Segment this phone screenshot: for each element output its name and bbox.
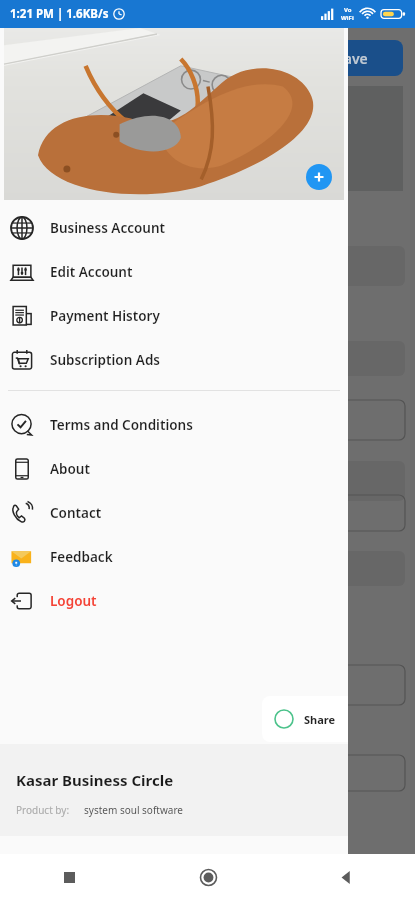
staticText: Product by: <box>16 803 70 817</box>
button[interactable]: Home <box>139 854 277 900</box>
button[interactable]: Back <box>277 854 415 900</box>
button[interactable]: Add <box>306 164 332 190</box>
button[interactable]: Feedback <box>0 535 348 579</box>
button[interactable]: About <box>0 447 348 491</box>
staticText: system soul software <box>84 803 184 817</box>
staticText: Feedback <box>50 548 113 566</box>
staticText: Vo <box>344 6 352 14</box>
staticText: Business Account <box>50 219 165 237</box>
staticText: Edit Account <box>50 263 133 281</box>
button[interactable]: Terms and Conditions <box>0 403 348 447</box>
staticText: About <box>50 460 90 478</box>
button[interactable]: Share <box>262 696 348 742</box>
staticText: 1:21 PM | 1.6KB/s <box>10 6 109 22</box>
button[interactable]: Contact <box>0 491 348 535</box>
button[interactable]: Subscription Ads <box>0 338 348 382</box>
button[interactable]: Save <box>300 40 403 76</box>
staticText: Share <box>304 712 336 727</box>
staticText: Terms and Conditions <box>50 416 193 434</box>
staticText: Contact <box>50 504 102 522</box>
staticText: Subscription Ads <box>50 351 160 369</box>
staticText: WiFi <box>341 14 354 22</box>
staticText: Save <box>336 49 368 68</box>
button[interactable]: Edit Account <box>0 250 348 294</box>
button[interactable]: Recents <box>0 854 139 900</box>
staticText: Payment History <box>50 307 160 325</box>
staticText: Logout <box>50 592 97 610</box>
staticText: Kasar Business Circle <box>16 770 174 790</box>
button[interactable]: Logout <box>0 579 348 623</box>
button[interactable]: Business Account <box>0 206 348 250</box>
button[interactable]: Payment History <box>0 294 348 338</box>
